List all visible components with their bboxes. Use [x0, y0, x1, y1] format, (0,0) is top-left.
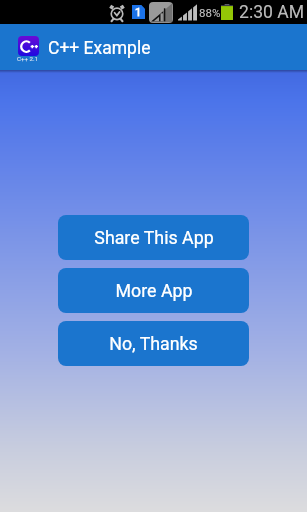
- button[interactable]: More App: [58, 268, 249, 313]
- other: Alarm: [109, 4, 125, 21]
- other: Battery 88 percent: [221, 4, 233, 20]
- staticText: C++ Example: [48, 38, 151, 59]
- staticText: No, Thanks: [109, 333, 198, 354]
- button[interactable]: No, Thanks: [58, 321, 249, 366]
- other: No SIM card: [149, 2, 173, 23]
- staticText: 1: [135, 6, 142, 19]
- staticText: 2:30 AM: [239, 2, 305, 23]
- other: Signal strength: [178, 3, 197, 21]
- button[interactable]: Share This App: [58, 215, 249, 260]
- staticText: 88%: [199, 6, 221, 19]
- staticText: Share This App: [94, 227, 214, 248]
- staticText: More App: [115, 280, 193, 301]
- staticText: C++ 2.1: [17, 55, 39, 62]
